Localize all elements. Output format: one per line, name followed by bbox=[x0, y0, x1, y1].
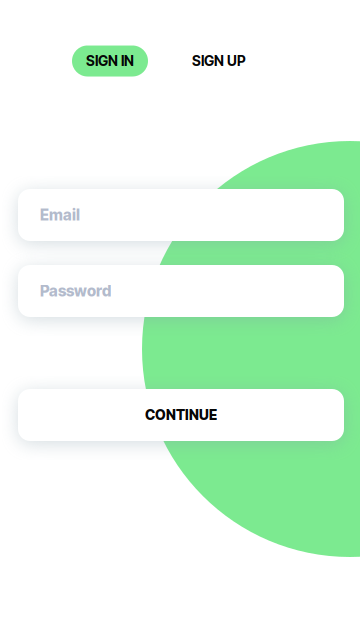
button[interactable]: CONTINUE bbox=[18, 389, 344, 441]
button[interactable]: SIGN IN bbox=[72, 45, 148, 76]
button[interactable]: Password bbox=[18, 265, 344, 317]
staticText: Password bbox=[40, 282, 111, 300]
button[interactable]: SIGN UP bbox=[181, 45, 257, 76]
staticText: SIGN IN bbox=[86, 52, 134, 69]
staticText: CONTINUE bbox=[145, 406, 217, 423]
staticText: Email bbox=[40, 206, 80, 224]
button[interactable]: Email bbox=[18, 189, 344, 241]
staticText: SIGN UP bbox=[192, 52, 246, 69]
